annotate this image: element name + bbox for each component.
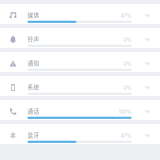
button[interactable]: 通话 bbox=[0, 100, 160, 120]
staticText: 媒体 bbox=[27, 11, 39, 19]
staticText: 100% bbox=[118, 109, 131, 115]
staticText: 蓝牙 bbox=[27, 131, 39, 139]
staticText: 通话 bbox=[27, 107, 39, 115]
staticText: 0% bbox=[123, 85, 131, 91]
staticText: 0% bbox=[123, 61, 131, 67]
button[interactable]: 蓝牙 bbox=[0, 124, 160, 144]
button[interactable]: 媒体 bbox=[0, 4, 160, 24]
staticText: 47% bbox=[120, 13, 131, 19]
button[interactable]: 系统 bbox=[0, 76, 160, 96]
staticText: 铃声 bbox=[27, 35, 39, 43]
staticText: 47% bbox=[120, 133, 131, 139]
button[interactable]: 通知 bbox=[0, 52, 160, 72]
staticText: 0% bbox=[123, 37, 131, 43]
button[interactable]: 铃声 bbox=[0, 28, 160, 48]
staticText: 系统 bbox=[27, 83, 39, 91]
staticText: 通知 bbox=[27, 59, 39, 67]
